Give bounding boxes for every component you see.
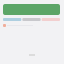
button[interactable] <box>3 4 60 15</box>
button[interactable] <box>22 18 41 21</box>
